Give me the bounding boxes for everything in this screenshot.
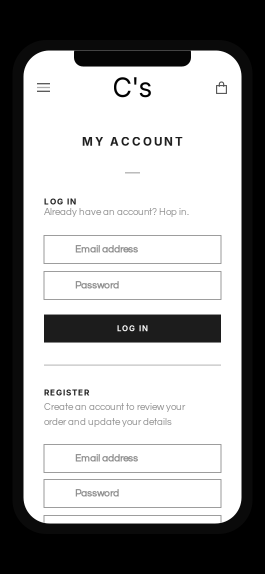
button[interactable]: Confirm password [44, 515, 221, 543]
staticText: R E G I S T E R [44, 388, 89, 397]
staticText: L O G I N [44, 197, 76, 206]
button[interactable]: Menu [30, 74, 56, 100]
button[interactable]: Password [44, 271, 221, 299]
button[interactable]: Password [44, 479, 221, 507]
button[interactable]: L O G I N [44, 314, 221, 342]
staticText: C's [112, 71, 152, 104]
staticText: Password [75, 280, 119, 291]
staticText: Password [75, 488, 119, 499]
button[interactable]: Shopping bag [208, 74, 234, 100]
staticText: Create an account to review your [44, 402, 185, 412]
button[interactable]: Email address [44, 444, 221, 472]
staticText: M Y A C C O U N T [82, 134, 183, 148]
staticText: L O G I N [117, 324, 148, 333]
staticText: Email address [75, 453, 138, 464]
staticText: Email address [75, 244, 138, 255]
button[interactable]: Email address [44, 235, 221, 263]
staticText: order and update your details [44, 417, 172, 427]
staticText: Already have an account? Hop in. [44, 207, 189, 217]
